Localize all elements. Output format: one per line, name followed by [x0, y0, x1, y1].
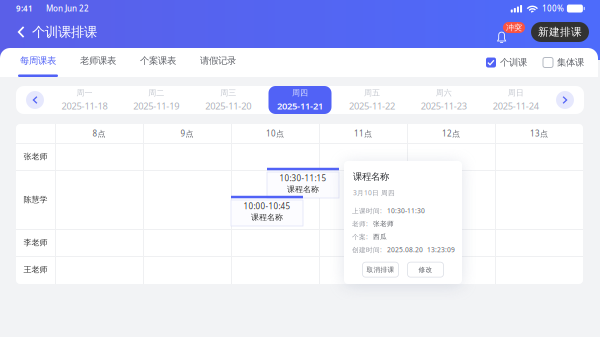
- staticText: 周五: [364, 88, 380, 98]
- staticText: 冲突: [506, 23, 522, 32]
- staticText: 10点: [266, 128, 284, 139]
- staticText: 周三: [220, 88, 236, 98]
- button[interactable]: 10:30-11:15: [267, 172, 339, 198]
- button[interactable]: 周三: [197, 86, 260, 114]
- staticText: 3月10日 周四: [353, 188, 395, 197]
- button[interactable]: 取消排课: [362, 262, 398, 277]
- staticText: 王老师: [23, 265, 47, 274]
- staticText: 周日: [508, 88, 524, 98]
- staticText: 周一: [76, 88, 92, 98]
- staticText: 个案课表: [140, 55, 176, 66]
- staticText: 张老师: [373, 220, 394, 228]
- button[interactable]: 老师课表: [78, 48, 118, 77]
- button[interactable]: 10:00-10:45: [231, 200, 303, 226]
- staticText: 集体课: [557, 57, 584, 68]
- button[interactable]: 个案课表: [138, 48, 178, 77]
- staticText: 陈慧学: [23, 195, 47, 204]
- staticText: 请假记录: [200, 55, 236, 66]
- staticText: 9点: [180, 128, 193, 139]
- staticText: 8点: [92, 128, 105, 139]
- staticText: 西瓜: [373, 233, 387, 241]
- staticText: 个案:: [352, 232, 368, 241]
- staticText: 老师课表: [80, 55, 116, 66]
- button[interactable]: 新建排课: [531, 22, 589, 42]
- button[interactable]: 周一: [53, 86, 116, 114]
- staticText: 9:41: [16, 3, 33, 14]
- button[interactable]: 集体课: [543, 50, 584, 74]
- staticText: 2025-11-19: [133, 100, 179, 112]
- staticText: 10:30-11:30: [387, 206, 425, 215]
- button[interactable]: 下一周: [556, 91, 574, 109]
- staticText: 2025-11-21: [277, 100, 323, 112]
- staticText: 13点: [530, 128, 548, 139]
- staticText: 100%: [542, 3, 564, 14]
- staticText: 2025-11-20: [205, 100, 251, 112]
- button[interactable]: 个训课排课: [0, 17, 105, 47]
- staticText: 修改: [418, 266, 432, 274]
- button[interactable]: 上一周: [26, 91, 44, 109]
- staticText: 周四: [292, 88, 308, 98]
- staticText: 个训课排课: [32, 24, 97, 40]
- button[interactable]: 个训课: [486, 50, 527, 74]
- staticText: 课程名称: [287, 184, 319, 194]
- staticText: 每周课表: [20, 55, 56, 66]
- staticText: 10:30-11:15: [279, 173, 326, 183]
- staticText: 2025-11-18: [61, 100, 107, 112]
- button[interactable]: 请假记录: [198, 48, 238, 77]
- button[interactable]: 周五: [340, 86, 403, 114]
- staticText: 10:00-10:45: [243, 201, 290, 211]
- button[interactable]: 周二: [125, 86, 188, 114]
- staticText: 老师:: [352, 219, 368, 228]
- button[interactable]: 修改: [407, 262, 443, 277]
- staticText: 周六: [436, 88, 452, 98]
- button[interactable]: 冲突提醒: [496, 19, 526, 45]
- staticText: 创建时间:: [352, 245, 382, 254]
- staticText: 课程名称: [353, 171, 389, 182]
- staticText: 新建排课: [538, 25, 582, 38]
- staticText: 个训课: [500, 57, 527, 68]
- staticText: 11点: [354, 128, 372, 139]
- staticText: 周二: [148, 88, 164, 98]
- staticText: 取消排课: [366, 266, 394, 274]
- button[interactable]: 周六: [412, 86, 475, 114]
- staticText: 12点: [442, 128, 460, 139]
- staticText: 李老师: [23, 238, 47, 247]
- staticText: 2025.08.20 13:23:09: [387, 245, 455, 254]
- staticText: 2025-11-22: [349, 100, 395, 112]
- button[interactable]: 周日: [484, 86, 547, 114]
- staticText: 张老师: [23, 152, 47, 161]
- button[interactable]: 每周课表: [18, 48, 58, 77]
- staticText: Mon Jun 22: [46, 3, 89, 14]
- staticText: 上课时间:: [352, 206, 382, 215]
- staticText: 2025-11-23: [421, 100, 467, 112]
- button[interactable]: 周四: [268, 86, 331, 114]
- staticText: 课程名称: [251, 212, 283, 222]
- staticText: 2025-11-24: [493, 100, 539, 112]
